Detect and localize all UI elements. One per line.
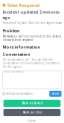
staticText: Reported by Jane Doe for the agent team: [2, 21, 61, 25]
button[interactable]: Work on This: [3, 109, 60, 116]
staticText: No conversation yet. You can start the c…: [2, 58, 59, 69]
staticText: Workstation will not connect to the shar…: [2, 35, 61, 42]
staticText: Send: [52, 92, 59, 95]
staticText: Ticket Reopened: [7, 2, 40, 8]
staticText: Work on This: [22, 111, 41, 114]
staticText: Follow conversation: [5, 92, 33, 95]
staticText: Mark as Solved: [21, 102, 42, 105]
staticText: Enter comment: [4, 70, 24, 74]
staticText: More information: [2, 44, 40, 49]
staticText: Close: [28, 119, 36, 123]
button[interactable]: Mark as Solved: [3, 100, 60, 107]
button[interactable]: Send: [49, 91, 61, 97]
staticText: Incident updated 2 minutes ago: [2, 9, 59, 20]
staticText: Problem: [2, 28, 19, 33]
staticText: Conversation: [2, 51, 30, 57]
button[interactable]: Close: [28, 119, 36, 123]
